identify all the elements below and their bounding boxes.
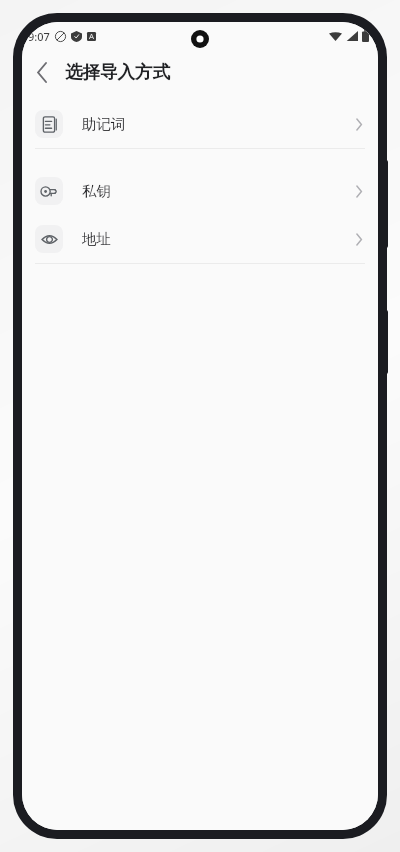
button[interactable]: 助记词 <box>22 100 378 148</box>
staticText: 选择导入方式 <box>65 61 170 83</box>
button[interactable]: Back <box>22 52 62 92</box>
staticText: 私钥 <box>82 182 356 200</box>
staticText: 助记词 <box>82 115 356 133</box>
button[interactable]: 私钥 <box>22 167 378 215</box>
staticText: 9:07 <box>28 29 50 44</box>
button[interactable]: 地址 <box>22 215 378 263</box>
staticText: 地址 <box>82 230 356 248</box>
